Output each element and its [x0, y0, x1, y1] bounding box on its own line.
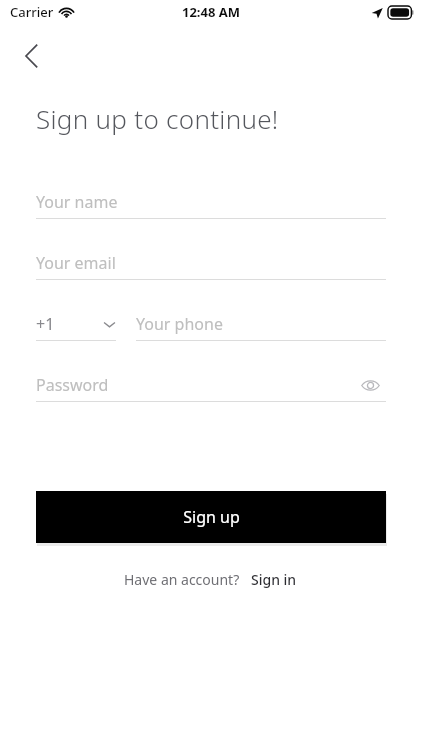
- button[interactable]: Your name: [36, 186, 386, 219]
- staticText: Your email: [36, 252, 116, 274]
- button[interactable]: Sign up: [36, 491, 386, 543]
- button[interactable]: Sign in: [249, 566, 299, 593]
- staticText: Sign in: [251, 570, 297, 589]
- staticText: Sign up to continue!: [36, 101, 279, 136]
- button[interactable]: Password: [36, 369, 386, 401]
- staticText: Sign up: [183, 506, 240, 528]
- staticText: 12:48 AM: [182, 3, 241, 21]
- button[interactable]: +1: [36, 308, 116, 341]
- button[interactable]: Show password: [354, 369, 386, 401]
- staticText: Have an account?: [124, 570, 240, 589]
- button[interactable]: Your phone: [136, 308, 386, 341]
- staticText: +1: [36, 313, 55, 335]
- staticText: Password: [36, 374, 354, 396]
- staticText: Your phone: [136, 313, 223, 335]
- staticText: Your name: [36, 191, 118, 213]
- button[interactable]: Your email: [36, 247, 386, 280]
- staticText: Carrier: [10, 3, 54, 21]
- button[interactable]: Back: [8, 32, 56, 80]
